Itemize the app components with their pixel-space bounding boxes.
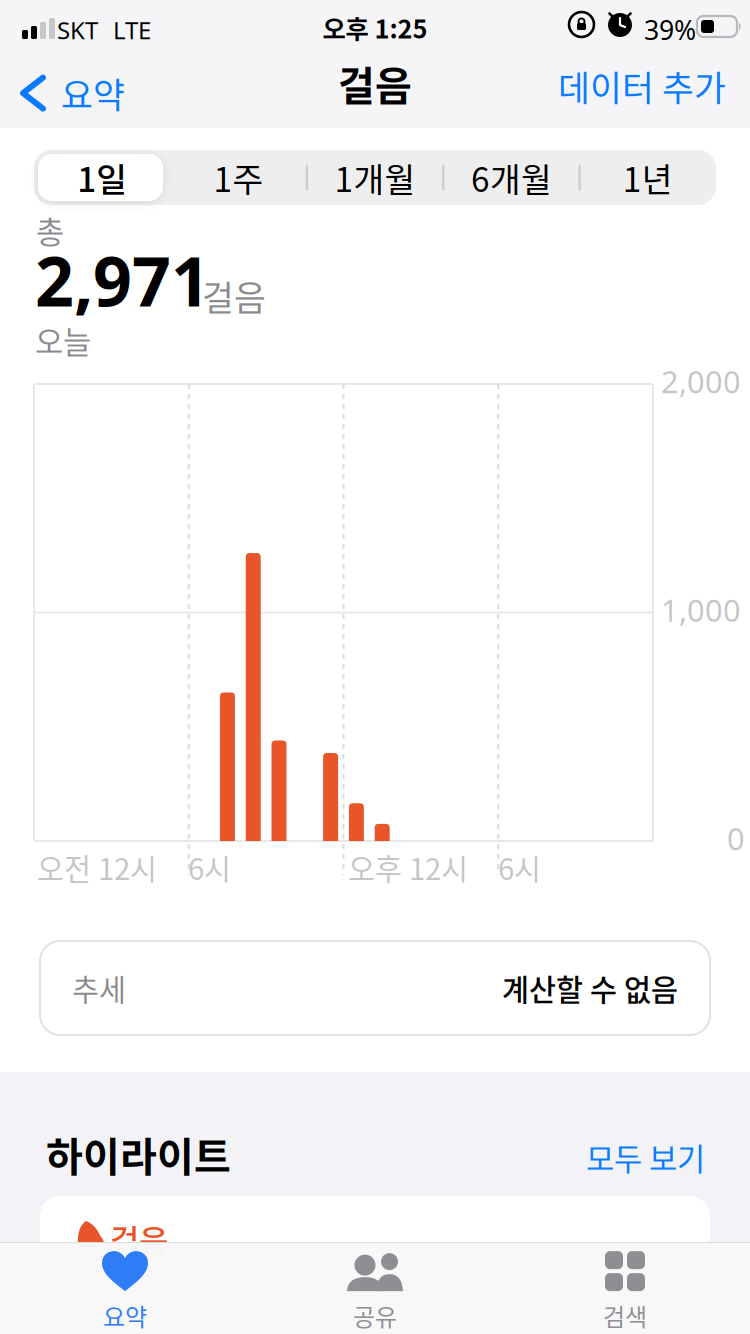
staticText: 39%	[644, 12, 696, 47]
staticText: 오후 1:25	[322, 9, 427, 46]
staticText: 추세	[72, 967, 126, 1009]
button[interactable]: 데이터 추가	[558, 61, 726, 111]
staticText: 1년	[623, 153, 673, 202]
staticText: 계산할 수 없음	[502, 967, 678, 1009]
button[interactable]: 검색	[535, 1251, 715, 1333]
button[interactable]: 1일	[34, 150, 170, 205]
button[interactable]: 요약	[20, 68, 125, 118]
button[interactable]: 6개월	[443, 150, 580, 205]
staticText: SKT	[57, 14, 98, 46]
button[interactable]: 걸음	[40, 1196, 710, 1334]
staticText: 1일	[77, 153, 127, 202]
staticText: 데이터 추가	[558, 61, 726, 111]
staticText: 검색	[603, 1298, 647, 1333]
staticText: 6시	[188, 846, 231, 888]
staticText: 오늘	[35, 318, 91, 362]
button[interactable]: 1주	[170, 150, 307, 205]
staticText: 1개월	[334, 153, 415, 202]
staticText: LTE	[113, 14, 151, 46]
staticText: 총	[36, 208, 64, 252]
staticText: 요약	[103, 1298, 147, 1333]
button[interactable]: 모두 보기	[586, 1135, 705, 1179]
staticText: 하이라이트	[46, 1125, 231, 1183]
staticText: 오후 12시	[348, 846, 468, 888]
staticText: 6시	[498, 846, 541, 888]
staticText: 걸음	[202, 271, 266, 321]
staticText: 걸음	[338, 54, 412, 112]
staticText: 공유	[353, 1298, 397, 1333]
staticText: 1,000	[661, 589, 741, 630]
button[interactable]: 1년	[580, 150, 716, 205]
staticText: 오전 12시	[37, 846, 157, 888]
staticText: 요약	[61, 68, 125, 118]
staticText: 2,000	[661, 361, 741, 402]
staticText: 1주	[214, 153, 264, 202]
staticText: 0	[727, 818, 745, 859]
button[interactable]: 요약	[35, 1251, 215, 1333]
staticText: 걸음	[110, 1216, 168, 1262]
staticText: 2,971	[35, 235, 210, 325]
button[interactable]: 1개월	[307, 150, 443, 205]
button[interactable]: 공유	[285, 1251, 465, 1333]
staticText: 모두 보기	[586, 1135, 705, 1179]
staticText: 6개월	[471, 153, 552, 202]
